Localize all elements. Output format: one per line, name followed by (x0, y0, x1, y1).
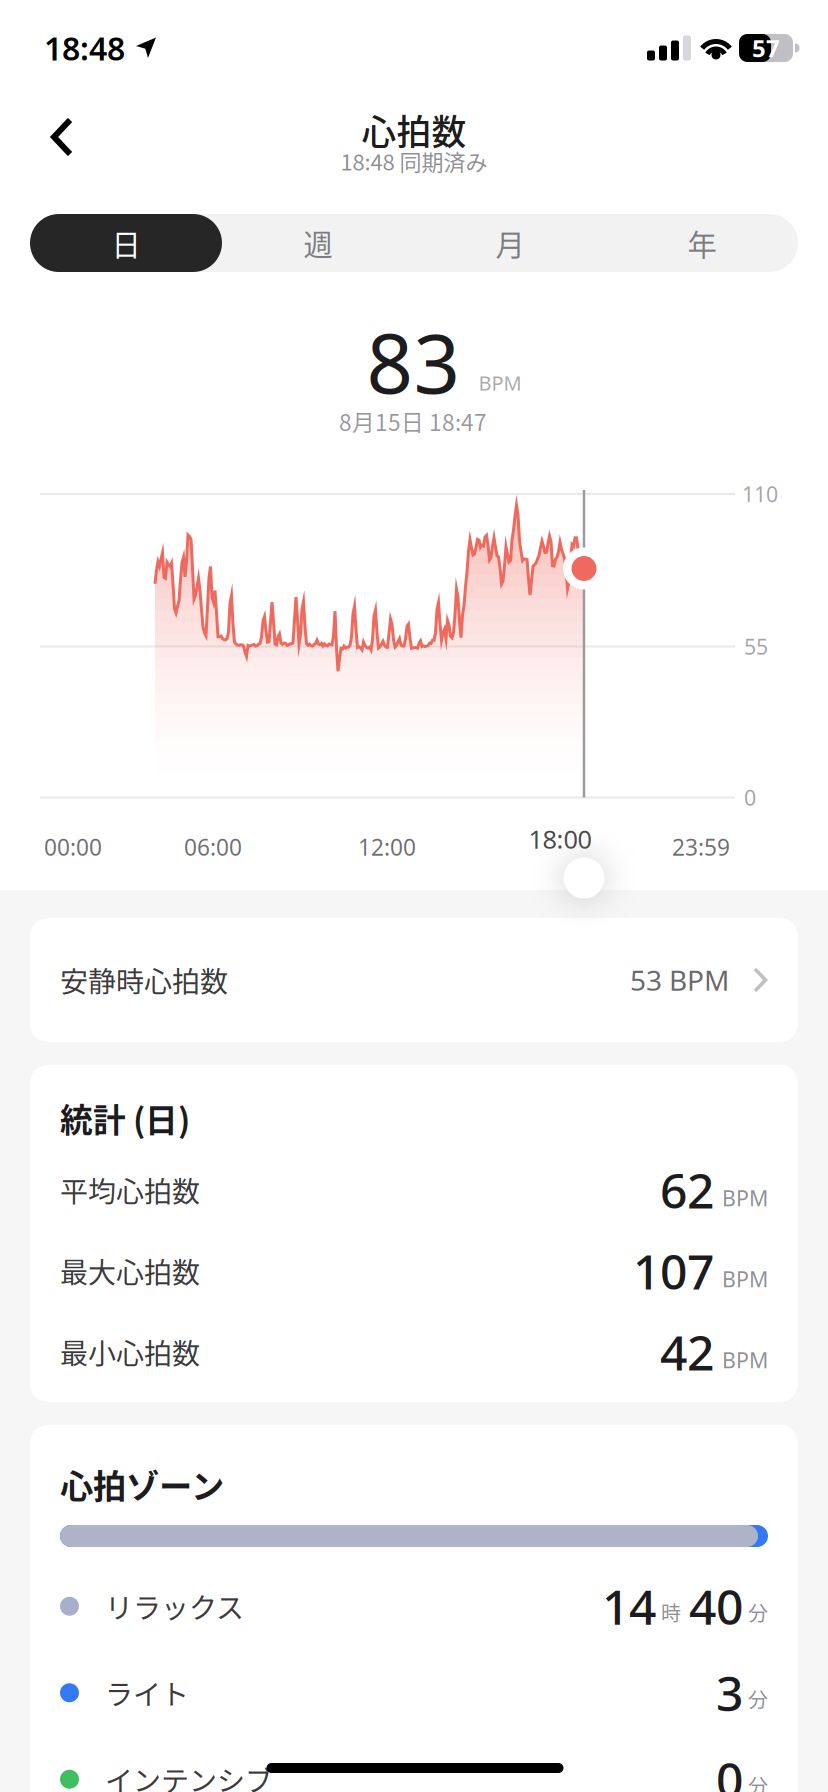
staticText: BPM (722, 1184, 768, 1212)
staticText: 18:48 (44, 27, 125, 69)
staticText: 18:48 同期済み (340, 145, 487, 177)
staticText: 分 (748, 1598, 768, 1627)
button[interactable]: 日 (30, 214, 222, 272)
staticText: 時 (661, 1598, 681, 1627)
staticText: 統計 (日) (60, 1094, 190, 1142)
staticText: 心拍数 (361, 105, 466, 155)
staticText: 0 (716, 1747, 743, 1792)
staticText: BPM (722, 1346, 768, 1374)
staticText: 日 (111, 222, 140, 264)
staticText: 年 (687, 222, 716, 264)
staticText: リラックス (105, 1586, 244, 1626)
staticText: 57 (752, 32, 780, 64)
staticText: BPM (478, 369, 521, 396)
button[interactable]: 年 (606, 214, 798, 272)
staticText: 42 (660, 1320, 714, 1384)
staticText: インテンシブ (105, 1759, 273, 1792)
staticText: 55 (744, 632, 768, 661)
staticText: 8月15日 18:47 (339, 405, 487, 437)
staticText: ライト (105, 1672, 189, 1713)
staticText: 62 (660, 1158, 714, 1222)
staticText: 分 (748, 1684, 768, 1713)
staticText: 分 (748, 1771, 768, 1792)
staticText: 14 (602, 1574, 656, 1638)
button[interactable]: 月 (414, 214, 606, 272)
staticText: BPM (722, 1265, 768, 1293)
staticText: 安静時心拍数 (60, 960, 228, 1000)
staticText: 心拍ゾーン (60, 1460, 224, 1508)
staticText: 12:00 (358, 832, 416, 862)
staticText: 平均心拍数 (60, 1170, 200, 1210)
staticText: 110 (742, 480, 778, 508)
staticText: 3 (716, 1661, 743, 1725)
button[interactable]: Back (12, 101, 94, 173)
staticText: 83 (366, 308, 460, 416)
staticText: 40 (689, 1574, 743, 1638)
staticText: 最小心拍数 (60, 1332, 200, 1372)
staticText: 18:00 (528, 822, 591, 856)
staticText: 23:59 (672, 832, 730, 862)
staticText: 06:00 (184, 832, 242, 862)
staticText: 週 (303, 222, 332, 264)
staticText: 0 (744, 783, 756, 812)
button[interactable]: 週 (222, 214, 414, 272)
staticText: 00:00 (44, 832, 102, 862)
staticText: 最大心拍数 (60, 1251, 200, 1291)
staticText: 月 (495, 222, 524, 264)
button[interactable]: 安静時心拍数 (30, 918, 798, 1042)
staticText: 53 BPM (630, 961, 729, 999)
staticText: 107 (633, 1239, 714, 1303)
